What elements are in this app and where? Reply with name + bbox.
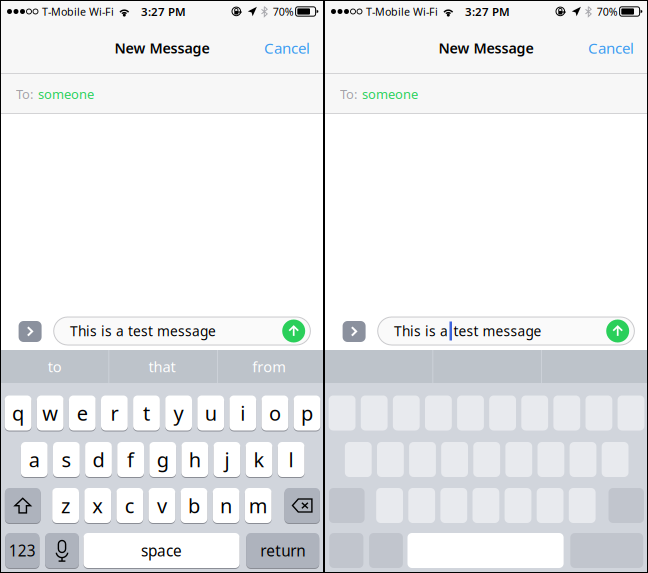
staticText: z	[61, 492, 70, 519]
button[interactable]: 123	[5, 533, 39, 568]
button[interactable]: q	[5, 395, 31, 430]
button[interactable]: r	[101, 395, 128, 430]
staticText: y	[174, 399, 184, 427]
staticText: someone	[362, 85, 418, 103]
button[interactable]: Cancel	[575, 22, 647, 74]
button[interactable]: d	[85, 442, 112, 477]
staticText: return	[260, 540, 305, 561]
staticText: r	[110, 399, 118, 427]
button[interactable]: m	[245, 488, 272, 523]
button[interactable]: from	[216, 350, 323, 383]
button[interactable]: o	[261, 395, 288, 430]
staticText: t	[143, 399, 150, 427]
staticText: m	[249, 492, 268, 519]
button[interactable]: b	[181, 488, 207, 523]
staticText: o	[269, 399, 281, 427]
staticText: New Message	[114, 38, 209, 58]
staticText: 123	[9, 540, 36, 561]
button[interactable]: v	[148, 488, 175, 523]
button[interactable]: To:	[1, 74, 323, 114]
button[interactable]: a	[21, 442, 48, 477]
staticText: from	[252, 356, 286, 376]
staticText: d	[92, 446, 104, 473]
button[interactable]: x	[84, 488, 111, 523]
staticText: l	[289, 446, 294, 473]
button[interactable]: y	[165, 395, 192, 430]
staticText: 3:27 PM	[465, 4, 510, 19]
staticText: s	[61, 446, 71, 473]
staticText: f	[127, 446, 134, 473]
staticText: q	[12, 399, 24, 427]
staticText: n	[220, 492, 232, 519]
button[interactable]: u	[197, 395, 224, 430]
staticText: 70%	[597, 4, 618, 19]
button[interactable]: j	[213, 442, 240, 477]
staticText: This is a	[394, 322, 448, 340]
staticText: test message	[453, 322, 541, 340]
staticText: p	[301, 399, 313, 427]
button[interactable]: c	[116, 488, 143, 523]
button[interactable]: Dictate	[45, 533, 79, 568]
staticText: w	[42, 399, 58, 427]
staticText: u	[205, 399, 217, 427]
button[interactable]: w	[37, 395, 64, 430]
button[interactable]: to	[1, 350, 108, 383]
button[interactable]: s	[53, 442, 80, 477]
staticText: someone	[38, 85, 94, 103]
button[interactable]: To:	[325, 74, 647, 114]
staticText: x	[92, 492, 103, 519]
staticText: To:	[16, 85, 33, 103]
button[interactable]: t	[133, 395, 160, 430]
staticText: b	[188, 492, 200, 519]
button[interactable]: i	[229, 395, 256, 430]
staticText: to	[48, 356, 62, 376]
button[interactable]: n	[213, 488, 239, 523]
button[interactable]: g	[149, 442, 176, 477]
button[interactable]: Apps	[343, 321, 366, 342]
staticText: that	[148, 356, 175, 376]
staticText: 3:27 PM	[141, 4, 186, 19]
button[interactable]: that	[108, 350, 216, 383]
staticText: v	[157, 492, 167, 519]
staticText: h	[189, 446, 201, 473]
button[interactable]: space	[83, 533, 240, 568]
staticText: New Message	[438, 38, 533, 58]
staticText: Cancel	[588, 38, 634, 58]
staticText: g	[157, 446, 169, 473]
button[interactable]: return	[246, 533, 319, 568]
staticText: T-Mobile Wi-Fi	[42, 4, 114, 19]
button[interactable]: Shift	[5, 488, 41, 523]
staticText: space	[141, 540, 182, 561]
staticText: This is a test message	[70, 322, 216, 340]
staticText: j	[224, 446, 229, 473]
button[interactable]: f	[117, 442, 144, 477]
staticText: 70%	[273, 4, 294, 19]
staticText: c	[125, 492, 135, 519]
staticText: e	[77, 399, 88, 427]
button[interactable]: Cancel	[251, 22, 323, 74]
button[interactable]: e	[69, 395, 96, 430]
staticText: a	[29, 446, 40, 473]
button[interactable]: Delete	[284, 488, 320, 523]
staticText: i	[240, 399, 245, 427]
staticText: To:	[340, 85, 357, 103]
button[interactable]: p	[294, 395, 320, 430]
button[interactable]: z	[52, 488, 79, 523]
staticText: T-Mobile Wi-Fi	[366, 4, 438, 19]
button[interactable]: Send	[282, 319, 305, 342]
staticText: k	[253, 446, 264, 473]
button[interactable]: Apps	[19, 321, 42, 342]
button[interactable]: k	[246, 442, 272, 477]
button[interactable]: l	[278, 442, 304, 477]
button[interactable]: Send	[606, 319, 629, 342]
staticText: Cancel	[264, 38, 310, 58]
button[interactable]: h	[181, 442, 208, 477]
